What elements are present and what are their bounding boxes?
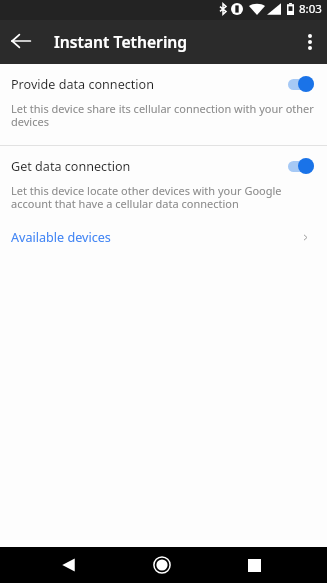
button[interactable]: Recents (200, 547, 309, 583)
staticText: 8:03 (299, 1, 322, 17)
staticText: Instant Tethering (54, 31, 188, 52)
button[interactable]: Back (0, 21, 42, 63)
staticText: Provide data connection (11, 76, 288, 93)
button[interactable]: Back (14, 547, 123, 583)
button[interactable]: Provide data connection toggle, on (288, 75, 316, 93)
staticText: Let this device locate other devices wit… (11, 183, 316, 211)
button[interactable]: Provide data connection (0, 64, 327, 145)
staticText: Available devices (11, 229, 111, 246)
button[interactable]: Get data connection toggle, on (288, 157, 316, 175)
button[interactable]: Available devices (0, 219, 327, 256)
button[interactable]: More options (293, 25, 327, 59)
button[interactable]: Get data connection (0, 146, 327, 219)
staticText: Let this device share its cellular conne… (11, 101, 316, 129)
staticText: Get data connection (11, 158, 288, 175)
button[interactable]: Home (123, 547, 200, 583)
